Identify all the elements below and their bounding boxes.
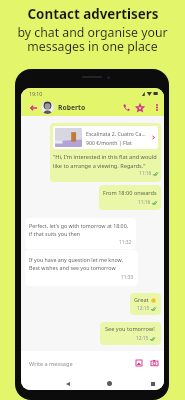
staticText: Great — [134, 296, 149, 304]
staticText: Roberto — [58, 103, 86, 112]
staticText: 12:15 — [136, 335, 149, 342]
button[interactable]: Write a message — [25, 357, 133, 370]
staticText: 11:16 — [139, 170, 152, 177]
button[interactable]: Camera — [148, 357, 160, 369]
staticText: Perfect, let's go with tomorrow at 18:00… — [29, 222, 129, 237]
staticText: 12:15 — [137, 305, 150, 312]
staticText: by chat and organise your messages in on… — [17, 24, 168, 55]
staticText: Write a message — [29, 360, 73, 368]
staticText: 11:16 — [138, 199, 151, 206]
staticText: Escalinata 2, Cuatro Ca... — [86, 130, 146, 137]
button[interactable]: Escalinata 2, Cuatro Ca... — [50, 123, 161, 182]
button[interactable]: Call — [121, 102, 132, 113]
staticText: From 18:00 onwards — [103, 189, 157, 197]
button[interactable]: Back — [28, 102, 39, 113]
staticText: If you have any question let me know. Be… — [29, 256, 123, 271]
staticText: "Hi, I'm interested in this flat and wou… — [53, 153, 158, 169]
button[interactable]: From 18:00 onwards — [99, 185, 161, 210]
button[interactable]: Escalinata 2, Cuatro Ca... — [53, 126, 158, 149]
staticText: 11:33 — [121, 274, 134, 281]
button[interactable]: Great — [130, 293, 161, 315]
button[interactable]: See you tomorrow! — [100, 322, 161, 345]
button[interactable]: Recents — [147, 378, 158, 389]
button[interactable]: More options — [151, 102, 162, 113]
button[interactable]: Attach image — [133, 357, 145, 369]
button[interactable]: Home — [104, 378, 115, 389]
button[interactable]: Perfect, let's go with tomorrow at 18:00… — [25, 218, 136, 249]
button[interactable]: Favourite — [134, 102, 145, 113]
staticText: 19:10 — [29, 90, 43, 97]
staticText: 900 €/month | Flat — [86, 139, 132, 146]
staticText: 11:32 — [119, 239, 132, 246]
staticText: See you tomorrow! — [105, 325, 155, 333]
button[interactable]: If you have any question let me know. Be… — [25, 250, 138, 286]
button[interactable]: Back — [62, 378, 73, 389]
staticText: Contact advertisers — [27, 5, 159, 23]
